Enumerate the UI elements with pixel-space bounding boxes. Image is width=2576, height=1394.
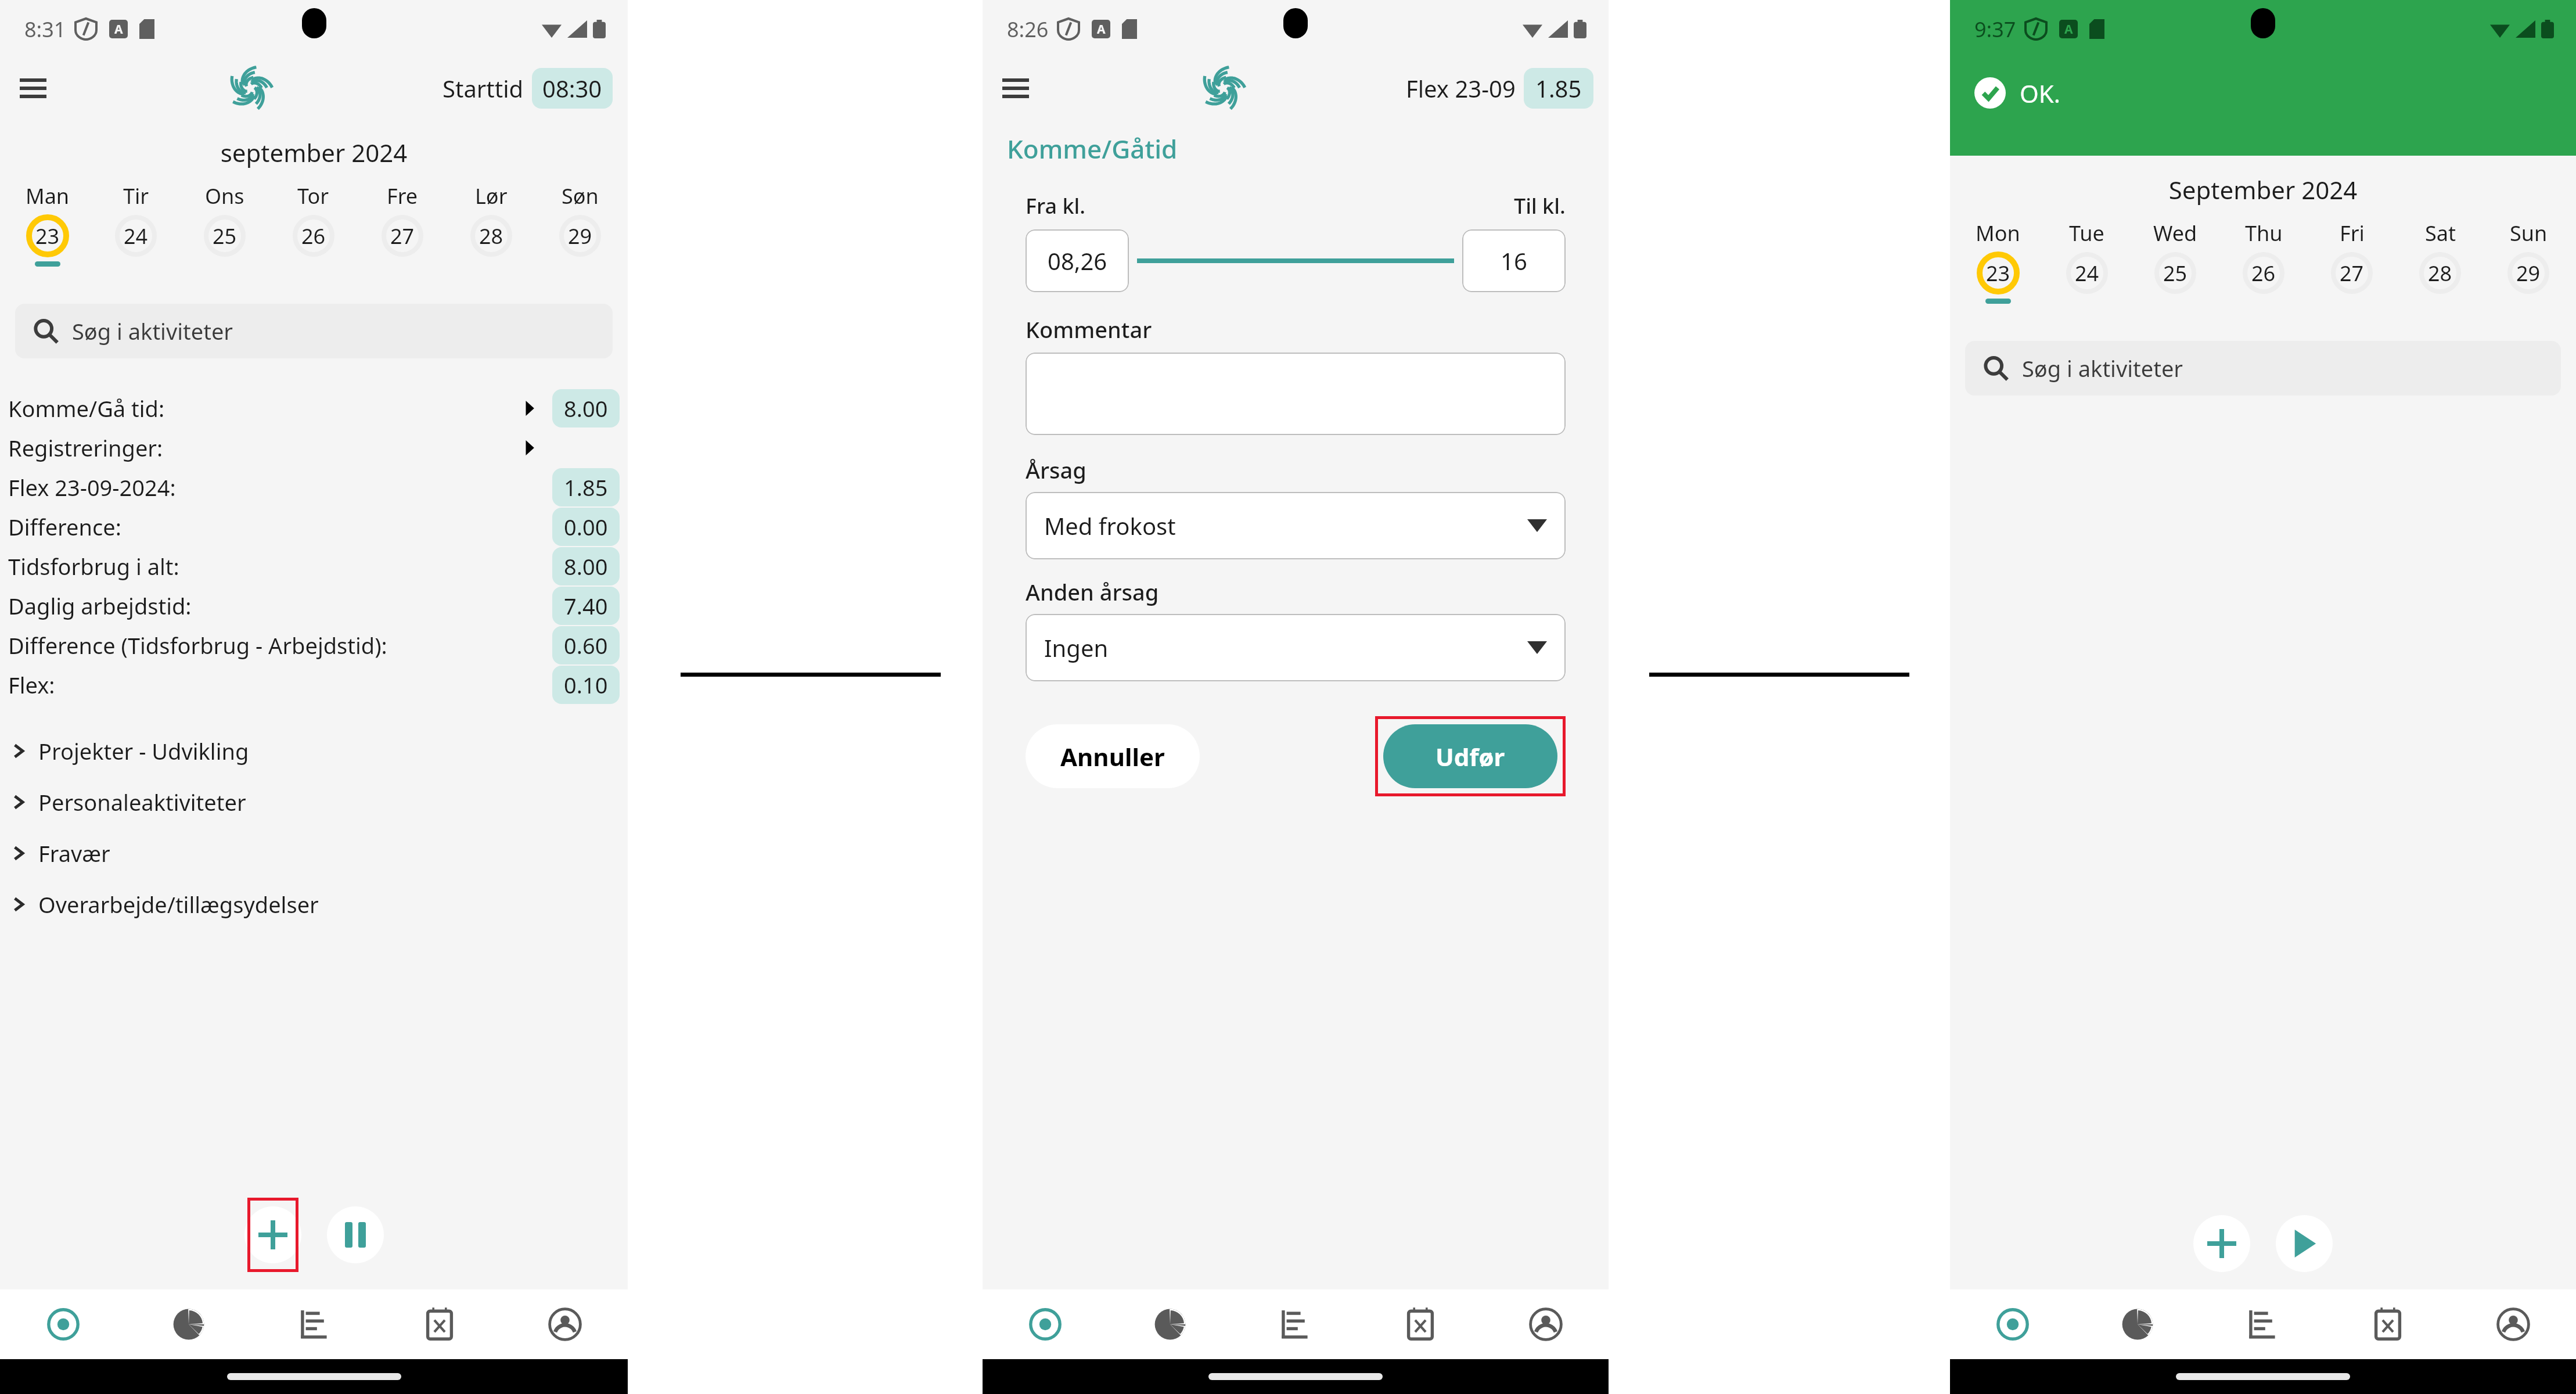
staticText: A xyxy=(2064,21,2073,38)
staticText: 24 xyxy=(2075,259,2099,288)
staticText: Thu xyxy=(2245,219,2283,247)
staticText: 1.85 xyxy=(564,472,608,502)
button[interactable]: Flex 23-09 xyxy=(1406,68,1593,109)
button[interactable]: Thu xyxy=(2219,219,2308,304)
staticText: 1.85 xyxy=(1535,73,1582,104)
button[interactable]: Flex 23-09-2024: xyxy=(0,468,628,507)
staticText: 0.60 xyxy=(564,630,608,660)
staticText: Komme/Gåtid xyxy=(1007,131,1178,166)
staticText: Wed xyxy=(2153,219,2197,247)
button[interactable]: Reports xyxy=(1232,1289,1358,1359)
button[interactable]: Start xyxy=(2276,1215,2333,1272)
button[interactable]: Tue xyxy=(2042,219,2131,304)
button[interactable]: Tidsforbrug i alt: xyxy=(0,547,628,586)
button[interactable]: Menu xyxy=(8,63,58,113)
button[interactable]: Menu xyxy=(991,63,1041,113)
staticText: A xyxy=(1097,21,1106,38)
button[interactable]: Statistics xyxy=(2075,1289,2200,1359)
staticText: Søn xyxy=(562,182,599,210)
button[interactable]: Profile xyxy=(502,1289,628,1359)
staticText: 16 xyxy=(1501,245,1527,276)
button[interactable]: Man xyxy=(3,182,92,267)
button[interactable]: Fre xyxy=(358,182,447,267)
staticText: 7.40 xyxy=(564,591,608,621)
staticText: 26 xyxy=(301,222,326,250)
staticText: 23 xyxy=(1986,259,2010,288)
button[interactable]: Wed xyxy=(2131,219,2219,304)
button[interactable]: Mon xyxy=(1953,219,2042,304)
button[interactable]: Tor xyxy=(269,182,358,267)
staticText: Projekter - Udvikling xyxy=(38,736,249,766)
button[interactable]: Annuller xyxy=(1026,724,1200,788)
button[interactable]: Calendar xyxy=(2325,1289,2451,1359)
button[interactable]: Calendar xyxy=(1358,1289,1483,1359)
button[interactable]: Lør xyxy=(447,182,535,267)
staticText: 8.00 xyxy=(564,551,608,581)
button[interactable] xyxy=(1026,353,1566,435)
button[interactable]: Flex: xyxy=(0,665,628,705)
button[interactable]: Profile xyxy=(1483,1289,1609,1359)
staticText: Med frokost xyxy=(1044,510,1176,541)
staticText: Daglig arbejdstid: xyxy=(8,591,192,621)
staticText: Anden årsag xyxy=(1026,577,1159,607)
button[interactable]: 08,26 xyxy=(1026,229,1129,292)
button[interactable]: Calendar xyxy=(377,1289,502,1359)
button[interactable]: Sat xyxy=(2396,219,2484,304)
button[interactable]: Ons xyxy=(180,182,269,267)
staticText: 08:30 xyxy=(542,73,602,104)
staticText: 9:37 xyxy=(1974,15,2016,44)
staticText: 28 xyxy=(2428,259,2452,288)
button[interactable]: Reports xyxy=(251,1289,377,1359)
button[interactable]: Statistics xyxy=(1107,1289,1232,1359)
button[interactable]: Personaleaktiviteter xyxy=(0,777,628,828)
staticText: Ons xyxy=(205,182,244,210)
button[interactable]: Reports xyxy=(2200,1289,2325,1359)
button[interactable]: Søg i aktiviteter xyxy=(15,304,613,358)
staticText: Ingen xyxy=(1044,632,1109,663)
button[interactable]: Søg i aktiviteter xyxy=(1965,341,2561,396)
button[interactable]: Med frokost xyxy=(1026,492,1566,559)
button[interactable]: 16 xyxy=(1462,229,1566,292)
button[interactable]: Home xyxy=(0,1289,126,1359)
button[interactable]: Registreringer: xyxy=(0,428,628,468)
staticText: Søg i aktiviteter xyxy=(72,316,233,346)
button[interactable]: Home xyxy=(1950,1289,2075,1359)
staticText: Difference: xyxy=(8,512,121,542)
staticText: Komme/Gå tid: xyxy=(8,393,165,423)
staticText: 23 xyxy=(35,222,60,250)
button[interactable]: Daglig arbejdstid: xyxy=(0,586,628,626)
button[interactable]: Statistics xyxy=(126,1289,251,1359)
button[interactable]: Difference: xyxy=(0,507,628,547)
staticText: 8:26 xyxy=(1007,15,1049,44)
button[interactable]: Add entry xyxy=(244,1206,301,1263)
button[interactable]: Fri xyxy=(2308,219,2396,304)
staticText: Udfør xyxy=(1435,740,1505,773)
staticText: Annuller xyxy=(1060,740,1165,773)
button[interactable]: Add entry xyxy=(2193,1215,2250,1272)
staticText: Fri xyxy=(2340,219,2365,247)
staticText: Man xyxy=(26,182,70,210)
button[interactable]: Overarbejde/tillægsydelser xyxy=(0,879,628,930)
staticText: Overarbejde/tillægsydelser xyxy=(38,889,319,919)
button[interactable]: Tir xyxy=(92,182,180,267)
staticText: Tor xyxy=(297,182,329,210)
staticText: Personaleaktiviteter xyxy=(38,787,246,817)
button[interactable]: Home xyxy=(983,1289,1107,1359)
button[interactable]: Søn xyxy=(535,182,624,267)
button[interactable]: Udfør xyxy=(1383,724,1557,788)
staticText: 0.00 xyxy=(564,512,608,542)
button[interactable]: Fravær xyxy=(0,828,628,879)
staticText: Sun xyxy=(2510,219,2548,247)
button[interactable]: Projekter - Udvikling xyxy=(0,725,628,777)
staticText: Fre xyxy=(387,182,418,210)
staticText: OK. xyxy=(2020,77,2061,110)
button[interactable]: Komme/Gå tid: xyxy=(0,389,628,428)
button[interactable]: Difference (Tidsforbrug - Arbejdstid): xyxy=(0,626,628,665)
button[interactable]: Profile xyxy=(2451,1289,2576,1359)
staticText: 27 xyxy=(2340,259,2364,288)
staticText: 28 xyxy=(479,222,503,250)
button[interactable]: Pause xyxy=(327,1206,384,1263)
button[interactable]: Ingen xyxy=(1026,614,1566,681)
button[interactable]: Starttid xyxy=(442,68,613,109)
button[interactable]: Sun xyxy=(2484,219,2573,304)
